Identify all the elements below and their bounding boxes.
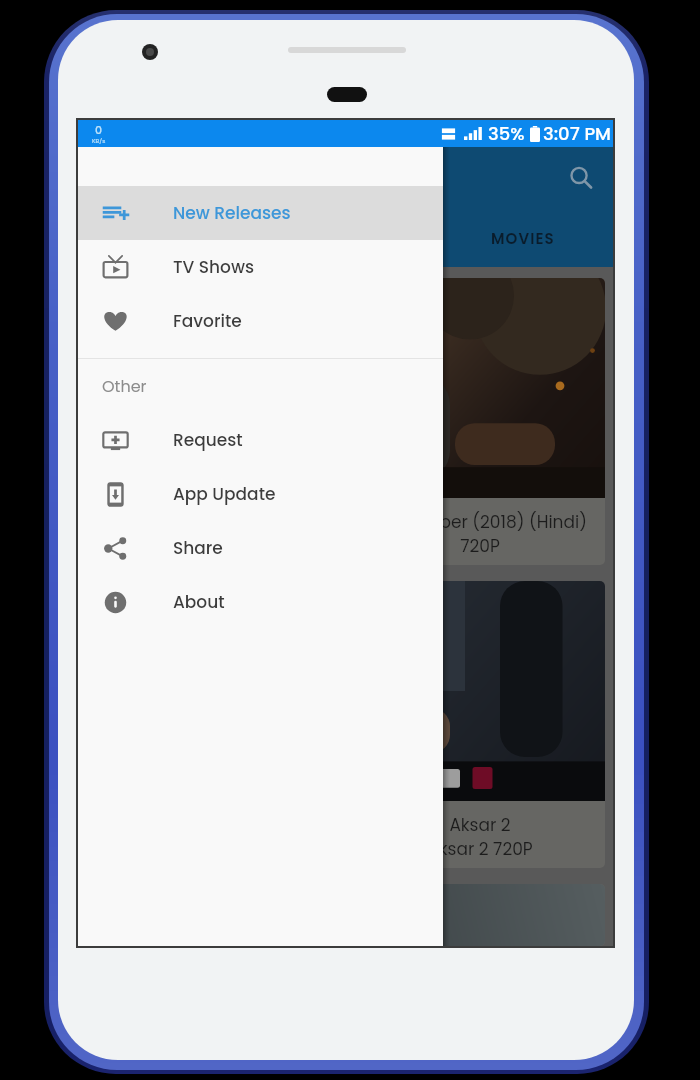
button[interactable] <box>355 884 605 946</box>
button[interactable]: App Update <box>78 467 443 521</box>
button[interactable]: New Releases <box>78 186 443 240</box>
button[interactable]: Favorite <box>78 294 443 348</box>
staticText: TV Shows <box>173 255 255 279</box>
staticText: New Releases <box>173 201 291 225</box>
staticText: Favorite <box>173 309 242 333</box>
button[interactable]: Share <box>78 521 443 575</box>
staticText: 0 <box>95 122 103 137</box>
staticText: Other <box>102 375 147 397</box>
staticText: Share <box>173 536 223 560</box>
button[interactable]: About <box>78 575 443 629</box>
staticText: 3:07 PM <box>543 121 611 146</box>
staticText: Skyscraper (2018) (Hindi) <box>374 510 587 534</box>
staticText: App Update <box>173 482 276 506</box>
staticText: Aksar 2 <box>449 813 511 837</box>
staticText: Request <box>173 428 243 452</box>
button[interactable]: Arjun Pandit <box>86 278 339 565</box>
button[interactable]: Aksar 2 <box>355 581 605 868</box>
button[interactable]: Skyscraper (2018) (Hindi) <box>355 278 605 565</box>
button[interactable]: Search <box>567 164 595 192</box>
button[interactable]: TV Shows <box>78 240 443 294</box>
staticText: 35% <box>488 121 525 146</box>
staticText: About <box>173 590 225 614</box>
staticText: Aksar 2 720P <box>427 837 533 861</box>
staticText: TV <box>238 228 260 249</box>
staticText: 720P <box>193 534 233 558</box>
staticText: 720P <box>460 534 500 558</box>
staticText: MOVIES <box>491 228 555 249</box>
staticText: KB/s <box>92 137 106 145</box>
button[interactable]: Request <box>78 413 443 467</box>
button[interactable]: Dil Juunglee <box>86 581 339 868</box>
